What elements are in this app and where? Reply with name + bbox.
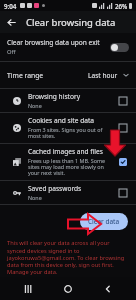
staticText: This will clear your data across all you… xyxy=(7,239,129,275)
button[interactable]: Back xyxy=(96,277,120,300)
button[interactable]: Time range xyxy=(0,62,136,88)
staticText: Cached images and files xyxy=(28,147,103,156)
button[interactable]: Back xyxy=(0,11,22,33)
button[interactable]: Saved passwords xyxy=(0,181,136,204)
staticText: None xyxy=(28,102,42,109)
staticText: 26% xyxy=(115,2,128,10)
staticText: Clear data xyxy=(88,217,120,226)
button[interactable]: Home xyxy=(56,277,80,300)
staticText: Off xyxy=(7,48,16,56)
staticText: Frees up less than 1 MB. Some sites may … xyxy=(28,157,112,177)
button[interactable]: Recent apps xyxy=(16,277,40,300)
button[interactable]: Cookies and site data xyxy=(0,113,136,143)
staticText: Cookies and site data xyxy=(28,116,95,125)
staticText: Last hour xyxy=(88,71,118,80)
button[interactable]: Clear data xyxy=(80,213,128,230)
staticText: Saved passwords xyxy=(28,184,82,193)
staticText: Clear browsing data xyxy=(26,16,116,29)
staticText: Browsing history xyxy=(28,92,81,101)
staticText: Time range xyxy=(7,71,44,80)
button[interactable]: Clear browsing data upon exit xyxy=(0,33,136,61)
staticText: None xyxy=(28,194,42,201)
staticText: From 3 sites. Signs you out of most site… xyxy=(28,126,112,140)
button[interactable]: Browsing history xyxy=(0,89,136,112)
staticText: Clear browsing data upon exit xyxy=(7,38,100,47)
button[interactable]: Cached images and files xyxy=(0,144,136,180)
staticText: 9:04 xyxy=(4,2,17,10)
